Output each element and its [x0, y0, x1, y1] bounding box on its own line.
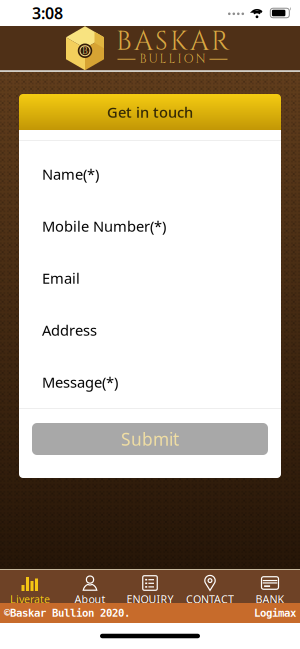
staticText: ©Baskar Bullion 2020. — [4, 607, 130, 619]
button[interactable]: BANK — [240, 575, 300, 606]
button[interactable]: Liverate — [0, 575, 60, 606]
staticText: Name(*) — [42, 164, 99, 184]
staticText: CONTACT — [186, 592, 234, 606]
staticText: Get in touch — [107, 102, 193, 122]
button[interactable]: Name(*) — [19, 148, 281, 200]
staticText: 3:08 — [32, 2, 63, 24]
button[interactable]: Mobile Number(*) — [19, 200, 281, 252]
button[interactable]: Submit — [32, 423, 268, 455]
staticText: BULLION — [139, 51, 205, 67]
button[interactable]: Logimax — [254, 607, 300, 619]
staticText: Logimax — [254, 607, 296, 619]
button[interactable]: Address — [19, 304, 281, 356]
staticText: BANK — [255, 592, 284, 606]
staticText: Address — [42, 320, 97, 340]
button[interactable]: ENQUIRY — [120, 575, 180, 606]
staticText: Message(*) — [42, 372, 118, 392]
button[interactable]: CONTACT — [180, 575, 240, 606]
button[interactable]: About — [60, 575, 120, 606]
button[interactable]: Message(*) — [19, 356, 281, 408]
staticText: Mobile Number(*) — [42, 216, 166, 236]
staticText: B — [82, 44, 88, 57]
staticText: ENQUIRY — [126, 592, 173, 606]
button[interactable]: Email — [19, 252, 281, 304]
staticText: BASKAR — [116, 24, 229, 60]
staticText: Liverate — [10, 592, 50, 606]
staticText: Submit — [121, 427, 179, 450]
staticText: Email — [42, 268, 80, 288]
staticText: About — [74, 592, 105, 606]
